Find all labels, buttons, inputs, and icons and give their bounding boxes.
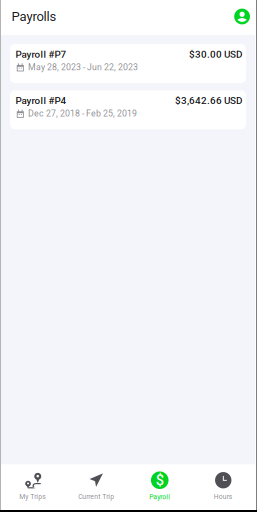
button[interactable]: My Trips	[1, 472, 64, 501]
staticText: $	[156, 472, 164, 489]
button[interactable]: Hours	[191, 472, 255, 501]
staticText: Dec 27, 2018 - Feb 25, 2019	[28, 108, 137, 119]
staticText: Payrolls	[11, 9, 56, 24]
staticText: $30.00 USD	[189, 48, 242, 60]
staticText: Payroll #P7	[15, 48, 66, 60]
staticText: May 28, 2023 - Jun 22, 2023	[28, 62, 138, 72]
button[interactable]: Current Trip	[64, 472, 128, 501]
button[interactable]: Payroll #P4	[10, 90, 246, 129]
staticText: Payroll	[149, 493, 170, 501]
button[interactable]: Payroll #P7	[10, 44, 246, 83]
staticText: Current Trip	[78, 493, 114, 501]
staticText: $3,642.66 USD	[175, 95, 242, 106]
staticText: Payroll #P4	[15, 95, 66, 106]
staticText: My Trips	[19, 493, 46, 501]
staticText: Hours	[214, 493, 233, 501]
button[interactable]: Account	[234, 9, 250, 24]
button[interactable]: $	[128, 471, 191, 501]
